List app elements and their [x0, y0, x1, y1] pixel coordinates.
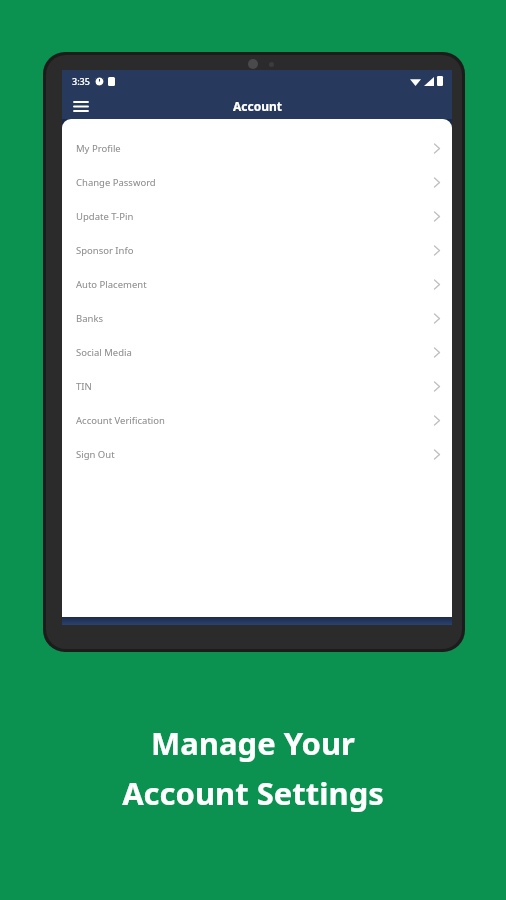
- staticText: Account Settings: [122, 772, 384, 814]
- button[interactable]: Account Verification: [62, 403, 452, 437]
- button[interactable]: Banks: [62, 301, 452, 335]
- button[interactable]: Update T-Pin: [62, 199, 452, 233]
- staticText: Social Media: [76, 346, 132, 359]
- staticText: My Profile: [76, 142, 121, 155]
- staticText: Manage Your: [151, 722, 355, 764]
- staticText: TIN: [76, 380, 92, 393]
- staticText: Auto Placement: [76, 278, 147, 291]
- staticText: Account Verification: [76, 414, 165, 427]
- button[interactable]: TIN: [62, 369, 452, 403]
- button[interactable]: Auto Placement: [62, 267, 452, 301]
- staticText: Sponsor Info: [76, 244, 134, 257]
- staticText: Change Password: [76, 176, 156, 189]
- button[interactable]: Open navigation menu: [70, 95, 92, 117]
- staticText: Sign Out: [76, 448, 115, 461]
- button[interactable]: Social Media: [62, 335, 452, 369]
- staticText: Account: [233, 98, 282, 114]
- staticText: Banks: [76, 312, 103, 325]
- button[interactable]: My Profile: [62, 131, 452, 165]
- staticText: 3:35: [72, 75, 90, 87]
- staticText: Update T-Pin: [76, 210, 134, 223]
- button[interactable]: Sponsor Info: [62, 233, 452, 267]
- button[interactable]: Sign Out: [62, 437, 452, 471]
- button[interactable]: Change Password: [62, 165, 452, 199]
